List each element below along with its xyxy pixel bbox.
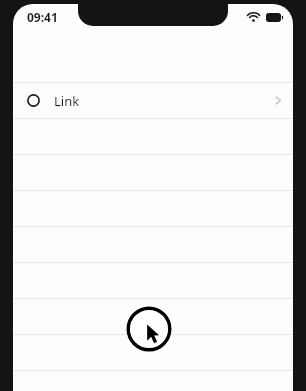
staticText: 09:41 xyxy=(27,9,58,25)
button[interactable] xyxy=(13,335,293,370)
button[interactable]: Pointer xyxy=(126,306,172,352)
staticText: Link xyxy=(54,92,80,110)
button[interactable]: Link xyxy=(13,83,293,118)
button[interactable] xyxy=(13,299,293,334)
